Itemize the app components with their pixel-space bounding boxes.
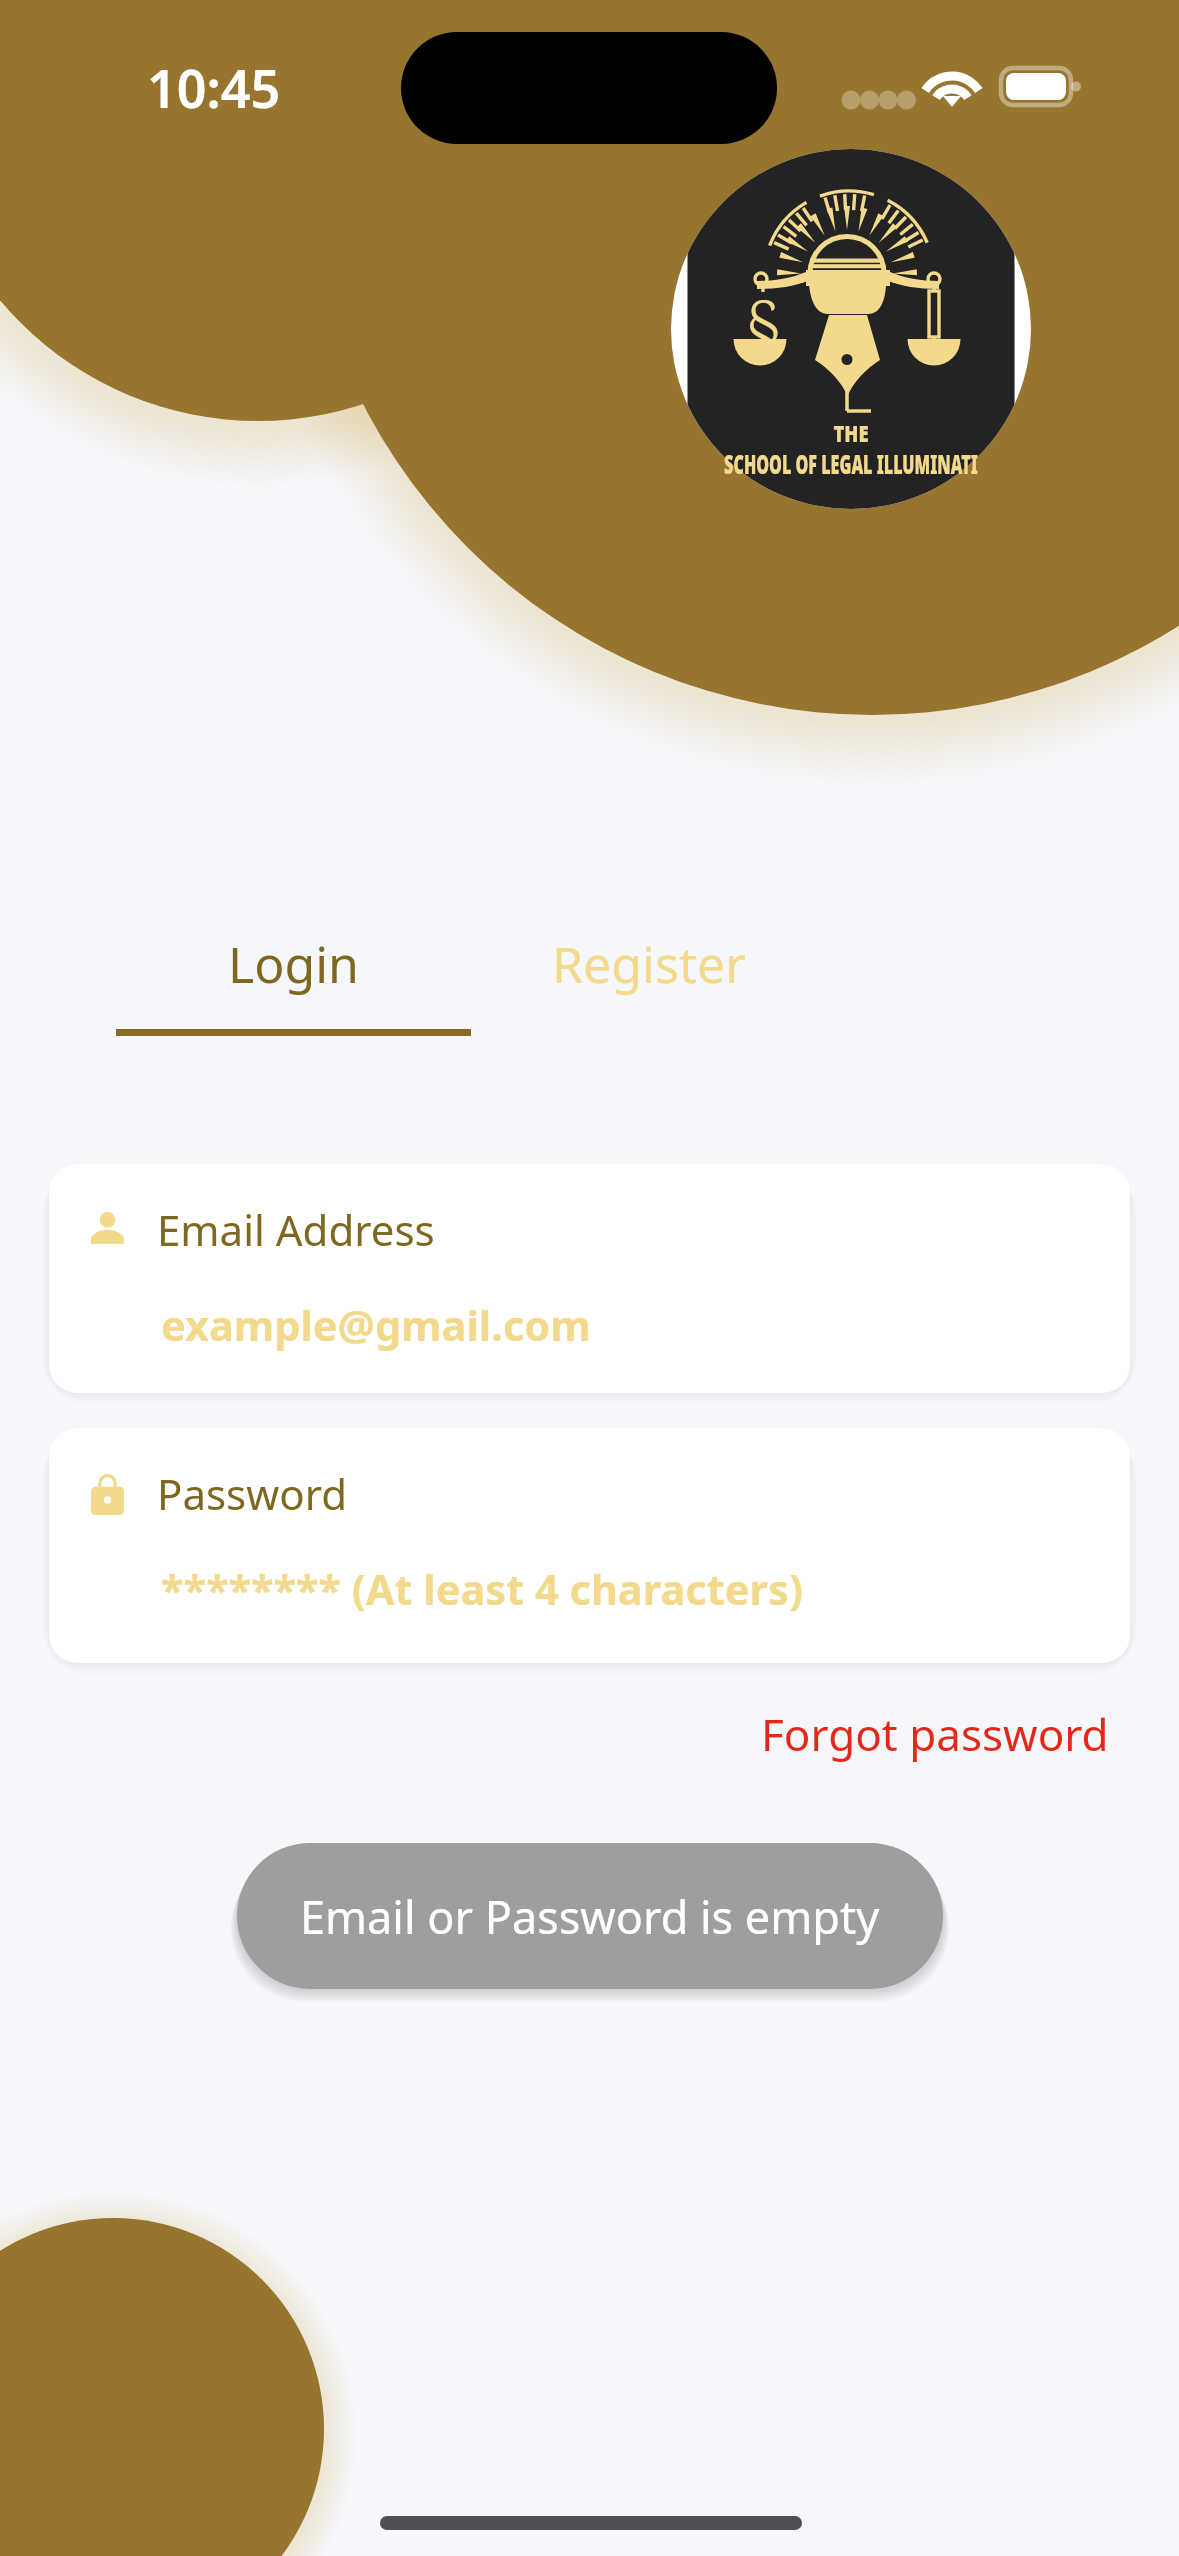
staticText: Login	[228, 930, 359, 998]
staticText: Password	[157, 1465, 347, 1522]
staticText: Email or Password is empty	[300, 1886, 880, 1947]
staticText: §	[744, 278, 783, 373]
button[interactable]: Forgot password	[759, 1700, 1111, 1768]
staticText: ******** (At least 4 characters)	[161, 1561, 803, 1618]
staticText: Email Address	[157, 1201, 435, 1258]
button[interactable]: Register	[471, 930, 826, 1042]
button[interactable]: Login	[116, 930, 471, 1036]
staticText: example@gmail.com	[161, 1297, 591, 1354]
staticText: Register	[552, 930, 746, 998]
button[interactable]: Email or Password is empty	[237, 1843, 943, 1989]
staticText: THE	[833, 417, 869, 448]
button[interactable]: Password	[49, 1428, 1130, 1663]
button[interactable]: Email Address	[49, 1164, 1130, 1393]
staticText: Forgot password	[761, 1704, 1109, 1764]
staticText: 10:45	[147, 52, 281, 123]
staticText: SCHOOL OF LEGAL ILLUMINATI	[724, 446, 978, 481]
